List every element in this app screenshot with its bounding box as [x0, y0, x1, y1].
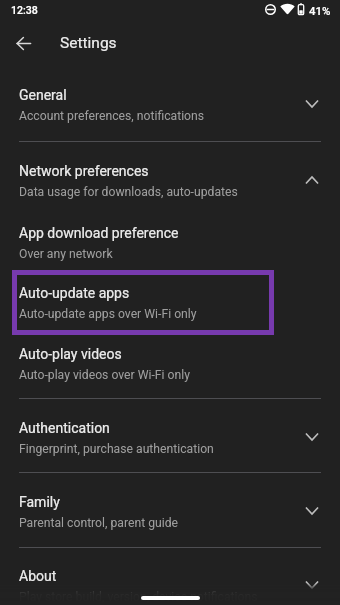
staticText: Play store build, version, device notifi… [19, 590, 258, 604]
button[interactable]: Network preferences [0, 151, 340, 211]
staticText: 12:38 [11, 4, 38, 16]
other: Wi-Fi [280, 4, 295, 14]
staticText: Over any network [19, 247, 113, 261]
button[interactable]: Back [9, 29, 37, 57]
staticText: Auto-update apps [19, 285, 130, 301]
staticText: Family [19, 494, 60, 510]
button[interactable]: Family [0, 482, 340, 542]
staticText: Auto-play videos [19, 346, 122, 362]
staticText: Account preferences, notifications [19, 109, 205, 123]
staticText: App download preference [19, 225, 179, 241]
button[interactable]: Authentication [0, 408, 340, 468]
other: Do not disturb [265, 4, 276, 15]
staticText: Data usage for downloads, auto-updates [19, 185, 238, 199]
button[interactable]: About [0, 556, 340, 605]
button[interactable]: Auto-play videos [0, 334, 340, 394]
staticText: Network preferences [19, 163, 149, 179]
staticText: About [19, 568, 57, 584]
button[interactable]: App download preference [0, 213, 340, 273]
other: Battery 41 percent [298, 3, 304, 15]
button[interactable]: General [0, 75, 340, 135]
staticText: General [19, 87, 67, 103]
staticText: Settings [60, 34, 117, 52]
staticText: Fingerprint, purchase authentication [19, 442, 214, 456]
staticText: Authentication [19, 420, 110, 436]
staticText: 41% [309, 4, 331, 17]
staticText: Auto-play videos over Wi-Fi only [19, 368, 190, 382]
button[interactable]: Auto-update apps [0, 273, 340, 333]
staticText: Parental control, parent guide [19, 516, 179, 530]
staticText: Auto-update apps over Wi-Fi only [19, 307, 197, 321]
